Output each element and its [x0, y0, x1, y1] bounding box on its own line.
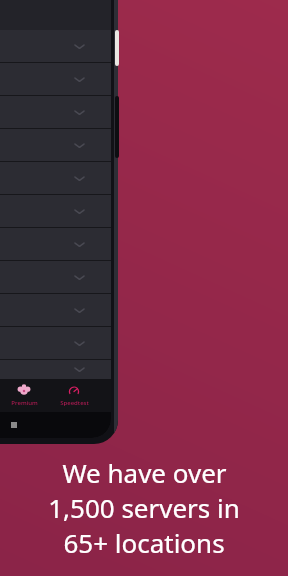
- staticText: 1,500 servers in: [48, 490, 240, 525]
- staticText: Premium: [11, 399, 38, 407]
- staticText: We have over: [62, 455, 227, 490]
- staticText: 65+ locations: [63, 525, 225, 560]
- button[interactable]: Power button: [115, 30, 119, 66]
- button[interactable]: Volume button: [115, 96, 119, 158]
- staticText: Speedtest: [60, 399, 89, 407]
- button[interactable]: Speedtest: [48, 379, 100, 412]
- button[interactable]: Premium: [0, 379, 48, 412]
